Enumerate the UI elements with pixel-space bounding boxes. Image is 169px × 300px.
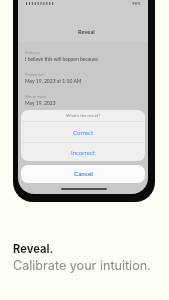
staticText: Reveal: [78, 28, 95, 35]
staticText: Cancel: [74, 170, 93, 178]
staticText: Existence: [25, 51, 40, 55]
staticText: Reveal.: [13, 242, 54, 256]
staticText: Incorrect: [71, 149, 95, 156]
staticText: May 19, 2023: [25, 100, 56, 106]
staticText: I believe this will happen because: [25, 56, 98, 62]
staticText: What's the result?: [66, 113, 101, 118]
staticText: Correct: [73, 129, 94, 136]
button[interactable]: Cancel: [21, 165, 145, 183]
staticText: Calibrate your intuition.: [13, 258, 151, 273]
staticText: Was to reveal: [25, 95, 46, 99]
staticText: May 19, 2023 at 1:10 AM: [25, 78, 82, 84]
staticText: Predicted on: [25, 73, 45, 77]
staticText: 98%: [132, 1, 141, 6]
button[interactable]: Correct: [21, 122, 145, 142]
button[interactable]: Incorrect: [21, 143, 145, 161]
